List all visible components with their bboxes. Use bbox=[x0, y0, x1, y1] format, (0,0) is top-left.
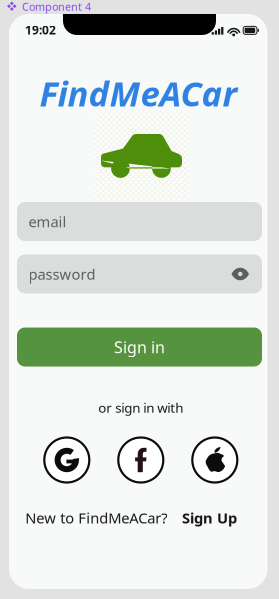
button[interactable]: Sign Up bbox=[182, 508, 237, 527]
button[interactable]: email bbox=[17, 202, 262, 241]
staticText: Sign Up bbox=[182, 508, 237, 527]
button[interactable]: Sign in bbox=[17, 327, 262, 366]
button[interactable]: Sign in with Google bbox=[44, 437, 89, 482]
staticText: password bbox=[28, 264, 95, 284]
staticText: Sign in bbox=[114, 336, 165, 358]
staticText: New to FindMeACar? bbox=[25, 508, 167, 527]
staticText: FindMeACar bbox=[39, 70, 237, 116]
button[interactable]: password bbox=[17, 254, 262, 293]
staticText: 19:02 bbox=[25, 22, 56, 38]
staticText: email bbox=[28, 212, 66, 231]
staticText: or sign in with bbox=[98, 399, 183, 416]
button[interactable]: Sign in with Apple bbox=[192, 437, 237, 482]
button[interactable]: Sign in with Facebook bbox=[118, 437, 163, 482]
staticText: Component 4 bbox=[22, 0, 91, 14]
